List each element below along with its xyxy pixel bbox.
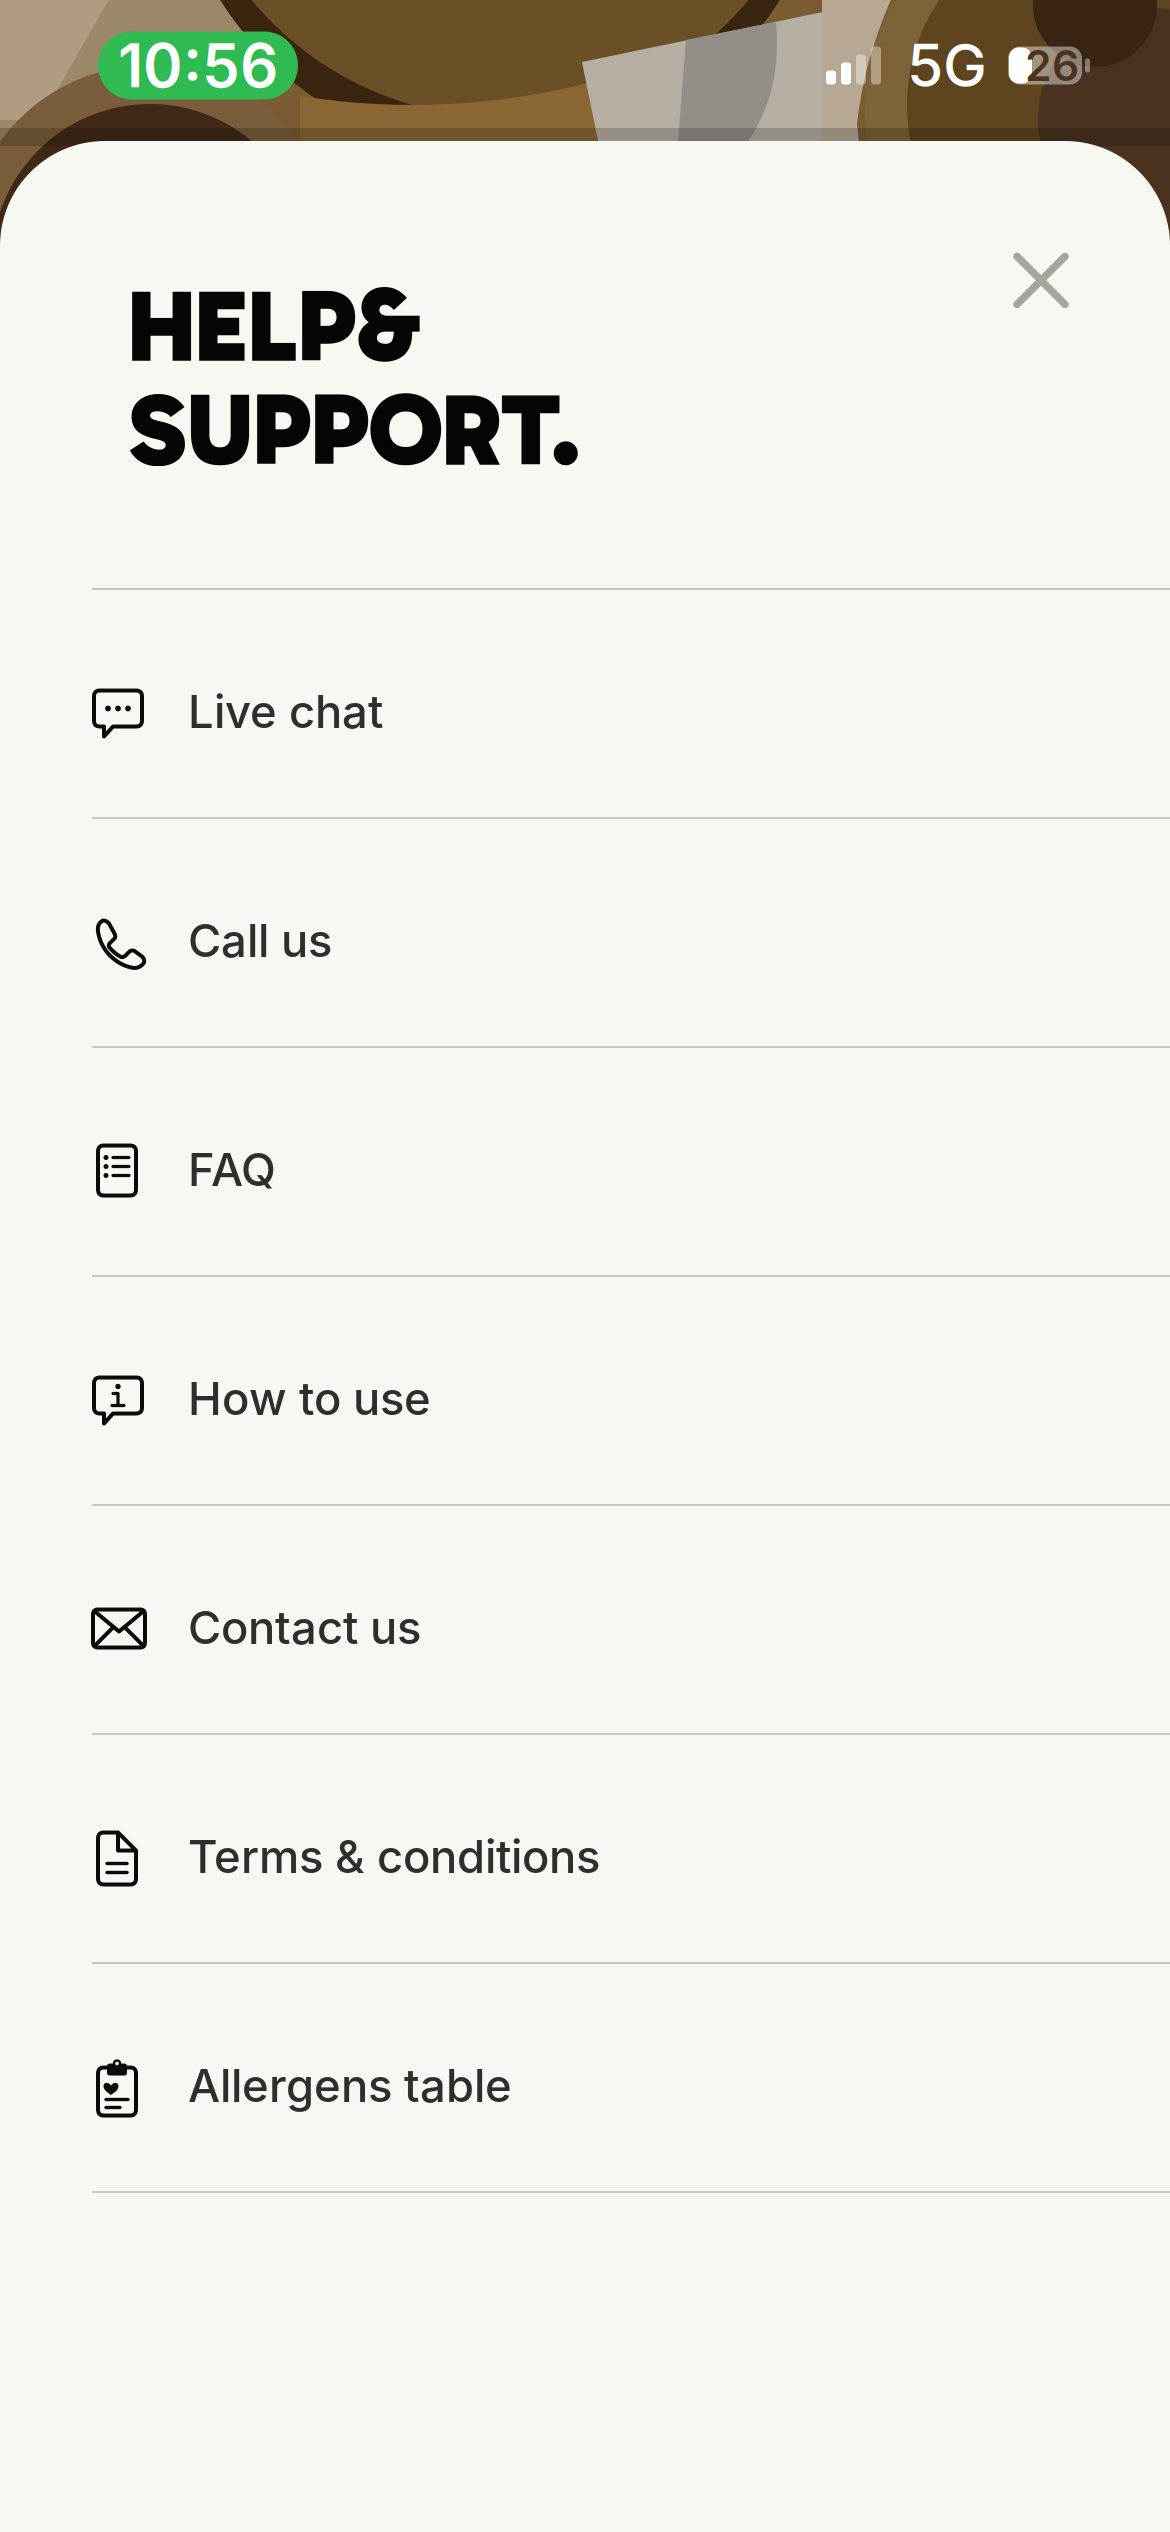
button[interactable]: Allergens table bbox=[0, 1964, 1170, 2193]
staticText: Contact us bbox=[188, 1600, 421, 1655]
button[interactable]: Close bbox=[990, 229, 1092, 331]
staticText: 5G bbox=[907, 30, 987, 101]
button[interactable]: Terms & conditions bbox=[0, 1735, 1170, 1964]
staticText: HELP& bbox=[128, 265, 421, 387]
button[interactable]: Call us bbox=[0, 819, 1170, 1048]
button[interactable]: Contact us bbox=[0, 1506, 1170, 1735]
staticText: SUPPORT. bbox=[128, 369, 580, 491]
button[interactable]: Live chat bbox=[0, 590, 1170, 819]
staticText: FAQ bbox=[188, 1142, 276, 1197]
button[interactable]: FAQ bbox=[0, 1048, 1170, 1277]
staticText: Live chat bbox=[188, 684, 383, 739]
staticText: Terms & conditions bbox=[188, 1829, 600, 1884]
staticText: Call us bbox=[188, 913, 332, 968]
staticText: How to use bbox=[188, 1371, 431, 1426]
button[interactable]: How to use bbox=[0, 1277, 1170, 1506]
staticText: 26 bbox=[1025, 40, 1079, 91]
staticText: 10:56 bbox=[118, 29, 278, 102]
staticText: Allergens table bbox=[188, 2058, 512, 2113]
